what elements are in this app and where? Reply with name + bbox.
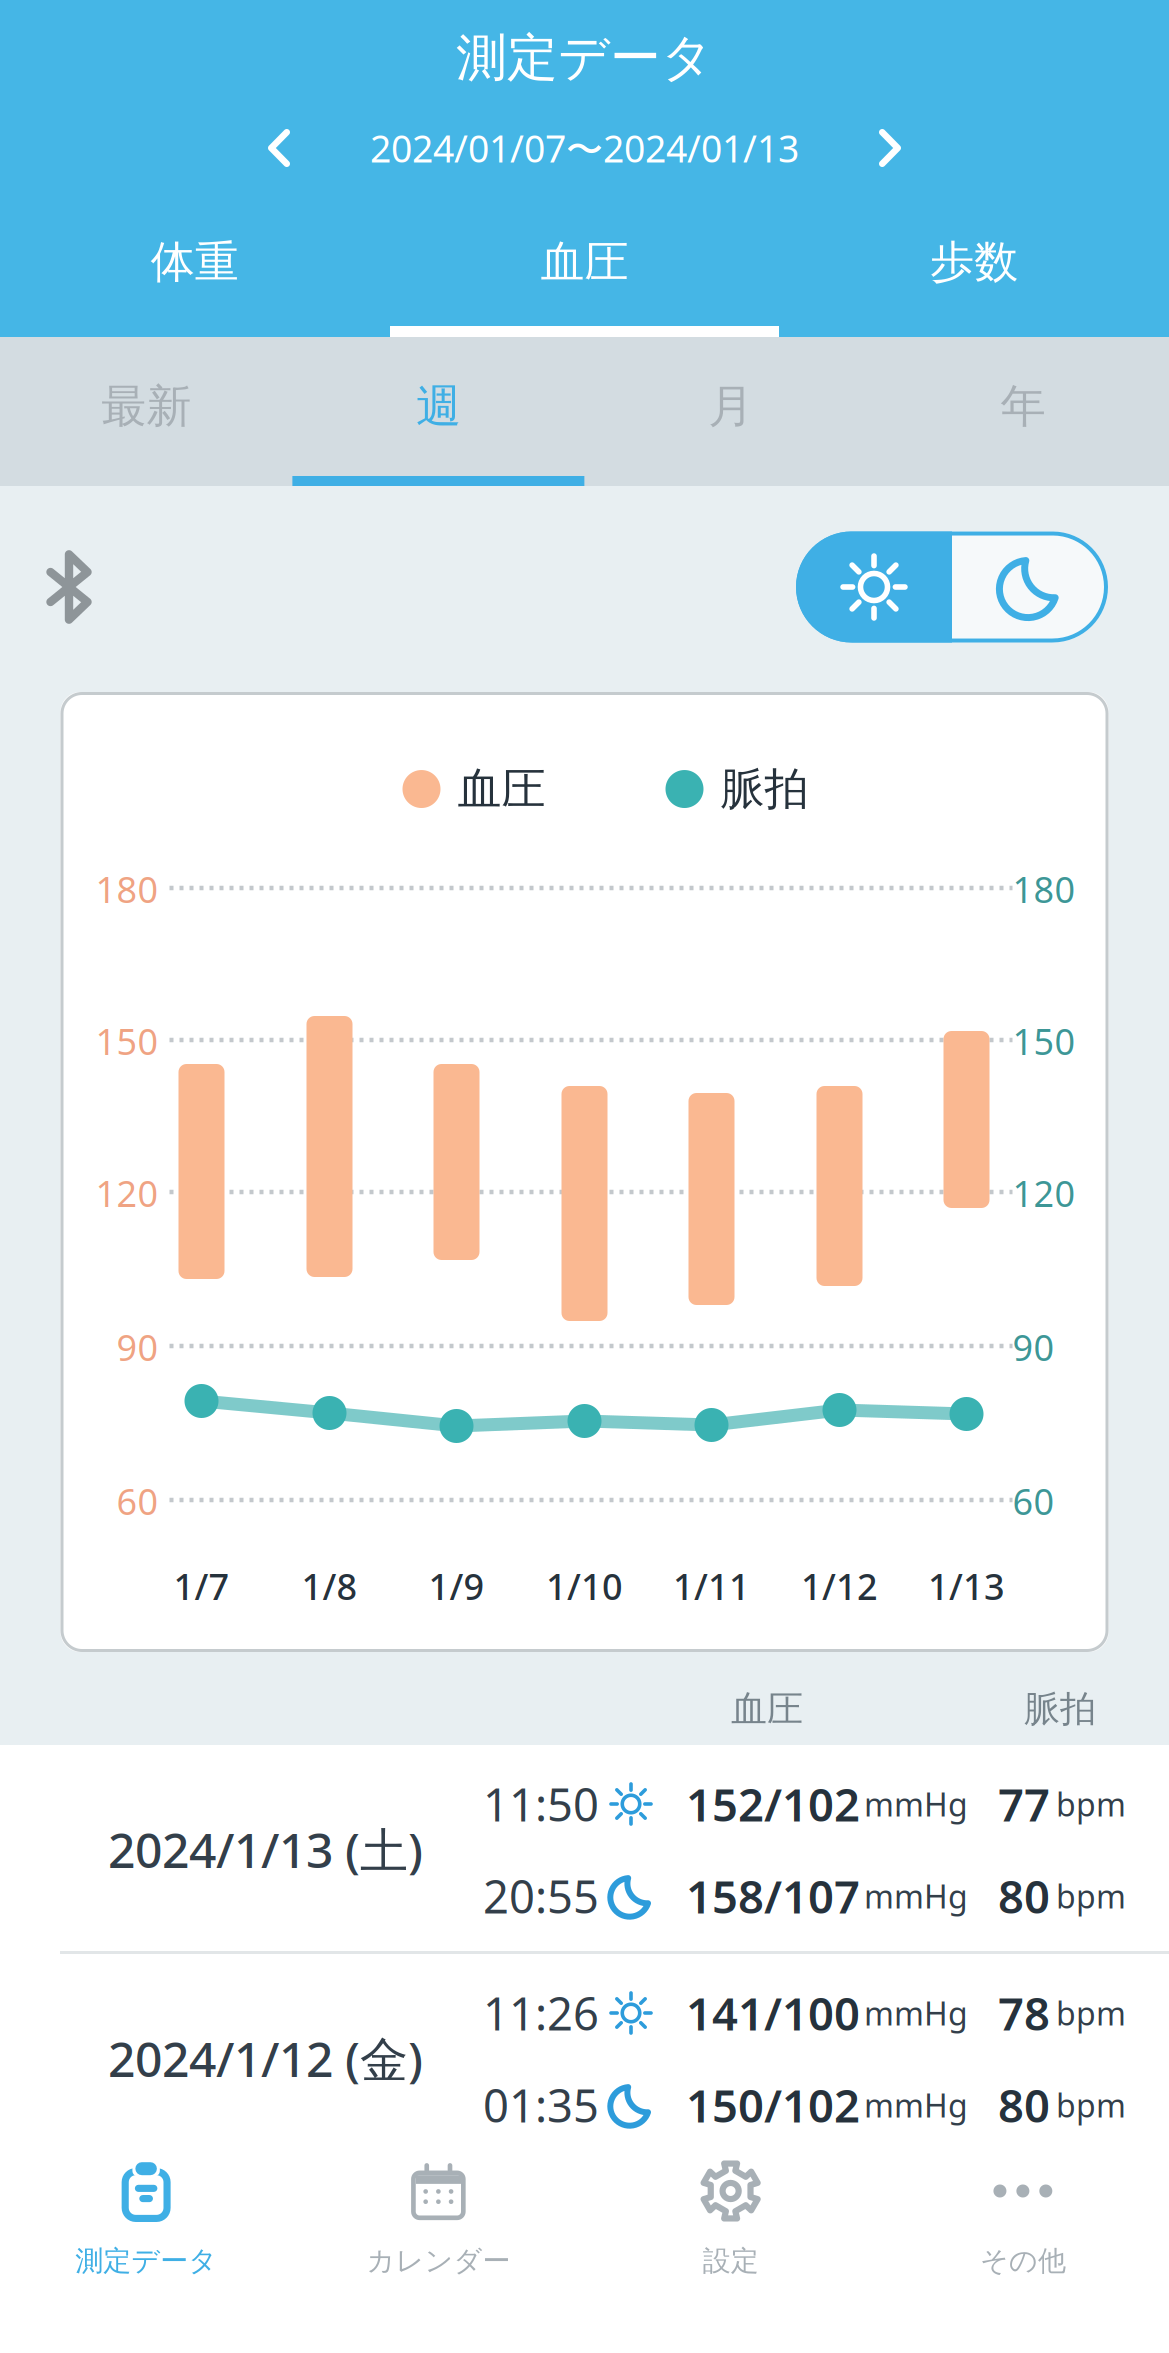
staticText: bpm [1056, 1875, 1126, 1917]
staticText: 60 [1012, 1477, 1054, 1525]
button[interactable]: 体重 [0, 180, 390, 337]
button[interactable]: 2024/1/13 (土) [0, 1745, 1169, 1954]
staticText: 150 [95, 1017, 158, 1065]
staticText: 血圧 [457, 762, 545, 816]
staticText: bpm [1056, 2084, 1126, 2126]
staticText: 1/7 [173, 1562, 229, 1610]
staticText: 90 [1012, 1323, 1054, 1371]
staticText: 1/10 [546, 1562, 623, 1610]
button[interactable]: 週 [292, 337, 584, 486]
staticText: 1/12 [801, 1562, 878, 1610]
button[interactable]: その他 [877, 2131, 1169, 2353]
staticText: 体重 [151, 235, 239, 289]
button[interactable]: 設定 [584, 2131, 877, 2353]
staticText: 01:35 [483, 2075, 599, 2135]
button[interactable]: 2024/1/12 (金) [0, 1954, 1169, 2163]
staticText: 2024/01/07〜2024/01/13 [370, 123, 799, 173]
staticText: 脈拍 [720, 762, 808, 816]
staticText: 152/102 [686, 1774, 860, 1834]
button[interactable]: 測定データ [0, 2131, 292, 2353]
staticText: 週 [416, 379, 461, 434]
staticText: 設定 [703, 2244, 759, 2278]
staticText: 2024/1/13 (土) [108, 1818, 423, 1881]
staticText: 1/13 [928, 1562, 1005, 1610]
staticText: 1/11 [673, 1562, 750, 1610]
staticText: 1/8 [301, 1562, 357, 1610]
staticText: 月 [708, 379, 753, 434]
staticText: その他 [980, 2244, 1066, 2278]
button[interactable]: 歩数 [779, 180, 1169, 337]
staticText: bpm [1056, 1992, 1126, 2034]
staticText: 77 [998, 1774, 1050, 1834]
staticText: 150 [1012, 1017, 1075, 1065]
staticText: カレンダー [366, 2244, 510, 2278]
staticText: 年 [1000, 379, 1045, 434]
staticText: 測定データ [456, 27, 713, 89]
staticText: 180 [1012, 865, 1075, 913]
button[interactable]: 血圧 [390, 180, 779, 337]
staticText: 141/100 [686, 1983, 860, 2043]
staticText: 150/102 [686, 2075, 860, 2135]
staticText: 120 [1012, 1169, 1075, 1217]
staticText: mmHg [864, 1783, 968, 1825]
staticText: 90 [116, 1323, 158, 1371]
button[interactable]: 昼夜切り替え [796, 531, 1108, 642]
staticText: 120 [95, 1169, 158, 1217]
staticText: 78 [998, 1983, 1050, 2043]
staticText: 11:50 [483, 1774, 599, 1834]
staticText: 測定データ [75, 2244, 217, 2278]
staticText: mmHg [864, 2084, 968, 2126]
staticText: 180 [95, 865, 158, 913]
staticText: 60 [116, 1477, 158, 1525]
staticText: mmHg [864, 1992, 968, 2034]
button[interactable]: 年 [877, 337, 1169, 486]
staticText: 1/9 [428, 1562, 484, 1610]
staticText: 最新 [101, 379, 191, 434]
staticText: 11:26 [483, 1983, 599, 2043]
button[interactable]: 月 [584, 337, 877, 486]
staticText: 2024/1/12 (金) [108, 2027, 423, 2090]
staticText: mmHg [864, 1875, 968, 1917]
staticText: 血圧 [731, 1687, 803, 1731]
staticText: 歩数 [930, 235, 1018, 289]
staticText: bpm [1056, 1783, 1126, 1825]
staticText: 脈拍 [1024, 1687, 1096, 1731]
staticText: 158/107 [686, 1866, 860, 1926]
button[interactable]: 最新 [0, 337, 292, 486]
staticText: 20:55 [483, 1866, 599, 1926]
staticText: 血圧 [540, 235, 628, 289]
button[interactable]: 次の週 [843, 111, 937, 185]
button[interactable]: カレンダー [292, 2131, 584, 2353]
staticText: 80 [998, 2075, 1050, 2135]
button[interactable]: 前の週 [232, 111, 326, 185]
staticText: 80 [998, 1866, 1050, 1926]
